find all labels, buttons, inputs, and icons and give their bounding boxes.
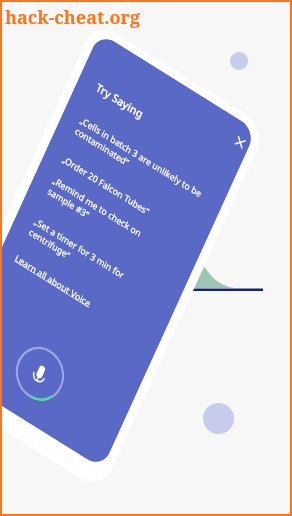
staticText: „Remind me to check on sample #3“ <box>40 154 149 270</box>
staticText: „Cells in batch 3 are unlikely to be con… <box>68 86 209 238</box>
button[interactable]: Close <box>223 124 257 160</box>
button[interactable]: Learn all about Voice <box>11 235 96 326</box>
staticText: „Order 20 Falcon Tubes“ <box>58 133 155 237</box>
staticText: Try Saying <box>91 69 149 132</box>
staticText: „Set a timer for 3 min for centrifuge“ <box>22 194 132 313</box>
staticText: hack-cheat.org <box>5 5 141 30</box>
button[interactable]: Microphone <box>0 326 84 421</box>
